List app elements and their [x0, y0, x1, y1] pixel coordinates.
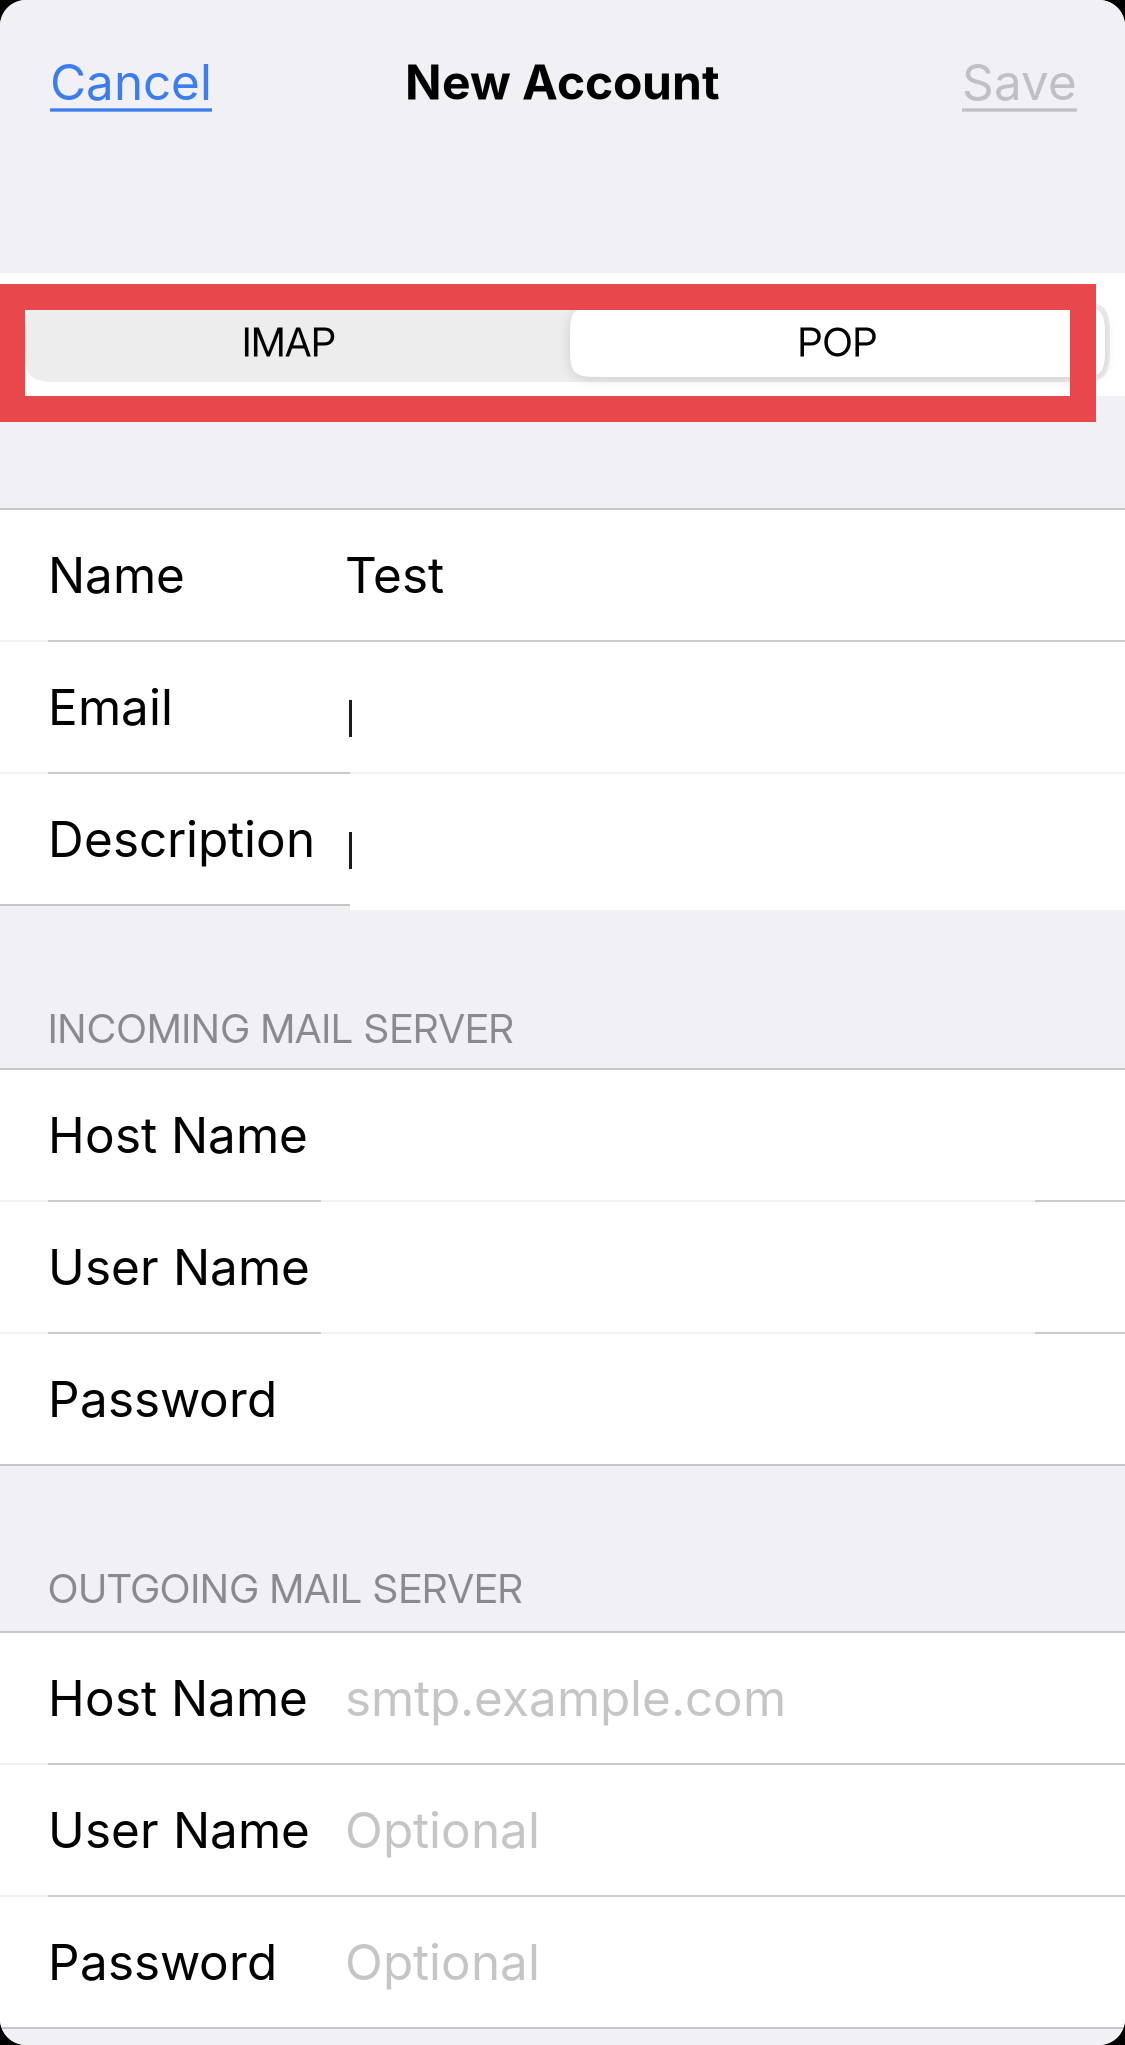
staticText: Email — [48, 677, 173, 737]
staticText: New Account — [405, 53, 720, 111]
staticText: Password — [48, 1932, 277, 1992]
staticText: Name — [48, 545, 185, 605]
button[interactable]: Name — [0, 510, 1125, 640]
staticText: Save — [962, 52, 1077, 112]
button[interactable]: User Name — [0, 1765, 1125, 1895]
staticText: Cancel — [50, 52, 212, 112]
button[interactable]: POP — [570, 307, 1105, 377]
button[interactable]: Password — [0, 1897, 1125, 2027]
staticText: Host Name — [48, 1668, 308, 1728]
button[interactable]: Password — [0, 1334, 1125, 1464]
staticText: Password — [48, 1369, 277, 1429]
button[interactable]: Description — [0, 774, 1125, 904]
button[interactable]: User Name — [0, 1202, 1125, 1332]
button[interactable]: IMAP — [30, 307, 570, 377]
staticText: User Name — [48, 1237, 310, 1297]
staticText: Optional — [345, 1800, 540, 1860]
button[interactable]: Host Name — [0, 1070, 1125, 1200]
button[interactable]: Host Name — [0, 1633, 1125, 1763]
staticText: Test — [345, 545, 444, 605]
staticText: Host Name — [48, 1105, 308, 1165]
staticText: OUTGOING MAIL SERVER — [48, 1564, 522, 1613]
staticText: POP — [797, 318, 877, 366]
staticText: smtp.example.com — [345, 1668, 786, 1728]
button[interactable]: Save — [962, 52, 1077, 112]
staticText: INCOMING MAIL SERVER — [48, 1004, 513, 1053]
button[interactable]: Email — [0, 642, 1125, 772]
button[interactable]: Cancel — [50, 52, 212, 112]
staticText: User Name — [48, 1800, 310, 1860]
staticText: IMAP — [242, 318, 336, 366]
staticText: Optional — [345, 1932, 540, 1992]
staticText: Description — [48, 809, 315, 869]
